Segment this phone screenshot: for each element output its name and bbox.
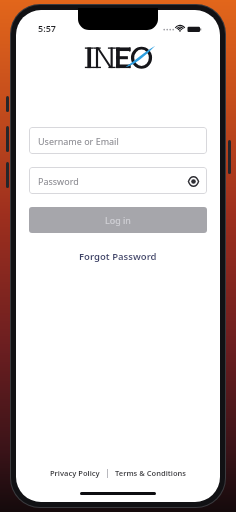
button[interactable]: Username or Email xyxy=(29,127,207,154)
staticText: Password xyxy=(38,175,79,187)
button[interactable]: Password xyxy=(29,167,207,194)
staticText: Forgot Password xyxy=(79,250,157,263)
staticText: Privacy Policy xyxy=(50,468,100,478)
button[interactable]: Log in xyxy=(29,207,207,233)
button[interactable]: Privacy Policy xyxy=(47,465,103,481)
staticText: Log in xyxy=(105,214,131,226)
staticText: Terms & Conditions xyxy=(115,468,187,478)
staticText: 5:57 xyxy=(38,22,56,34)
button[interactable]: Terms & Conditions xyxy=(112,465,190,481)
button[interactable]: Show password xyxy=(186,174,200,188)
staticText: Username or Email xyxy=(38,135,119,147)
button[interactable]: Forgot Password xyxy=(75,248,161,265)
